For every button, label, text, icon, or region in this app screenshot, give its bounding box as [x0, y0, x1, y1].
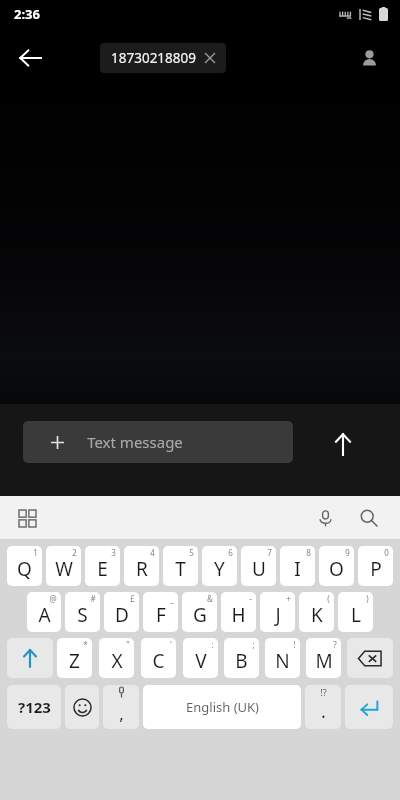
staticText: 5	[189, 547, 194, 558]
staticText: T	[175, 556, 186, 582]
staticText: ?123	[18, 697, 51, 717]
staticText: 0	[384, 547, 389, 558]
staticText: H	[231, 602, 246, 628]
staticText: £	[130, 593, 135, 604]
staticText: O	[329, 556, 344, 582]
staticText: ,	[119, 702, 124, 725]
button[interactable]: Text message	[23, 421, 293, 463]
button[interactable]: !	[265, 638, 300, 678]
button[interactable]: :	[183, 638, 218, 678]
button[interactable]: 4	[124, 546, 159, 586]
button[interactable]: &	[182, 592, 217, 632]
button[interactable]: 6	[202, 546, 237, 586]
staticText: L	[351, 602, 361, 628]
staticText: V	[195, 648, 207, 674]
button[interactable]: Backspace	[347, 638, 393, 678]
staticText: M	[315, 648, 333, 674]
staticText: 2	[72, 547, 77, 558]
button[interactable]: 1	[7, 546, 42, 586]
button[interactable]: £	[104, 592, 139, 632]
button[interactable]: Voice input	[306, 499, 344, 537]
button[interactable]: *	[57, 638, 92, 678]
button[interactable]: ,	[103, 685, 139, 729]
staticText: +	[286, 593, 291, 604]
staticText: N	[275, 648, 290, 674]
staticText: P	[370, 556, 382, 582]
staticText: ?	[333, 639, 337, 650]
staticText: X	[111, 648, 123, 674]
button[interactable]: -	[221, 592, 256, 632]
staticText: )	[366, 593, 369, 604]
button[interactable]: Contact details	[348, 37, 390, 79]
button[interactable]: _	[143, 592, 178, 632]
staticText: #	[90, 593, 96, 604]
button[interactable]: "	[99, 638, 134, 678]
staticText: English (UK)	[186, 698, 259, 716]
button[interactable]: 0	[358, 546, 393, 586]
button[interactable]: +	[260, 592, 295, 632]
button[interactable]: 3	[85, 546, 120, 586]
staticText: 3	[111, 547, 116, 558]
button[interactable]: Emoji	[65, 685, 99, 729]
staticText: C	[152, 648, 165, 674]
button[interactable]: Enter	[345, 685, 393, 729]
staticText: &	[207, 593, 213, 604]
staticText: Z	[69, 648, 80, 674]
button[interactable]: English (UK)	[143, 685, 301, 729]
staticText: W	[55, 556, 73, 582]
staticText: B	[235, 648, 248, 674]
button[interactable]: )	[338, 592, 373, 632]
staticText: Q	[17, 556, 32, 582]
button[interactable]: ;	[224, 638, 259, 678]
staticText: !?	[320, 686, 327, 698]
staticText: _	[170, 593, 174, 604]
button[interactable]: '	[141, 638, 176, 678]
staticText: (	[327, 593, 330, 604]
button[interactable]: Send	[320, 421, 366, 467]
button[interactable]: ?	[306, 638, 341, 678]
staticText: G	[193, 602, 207, 628]
staticText: @	[49, 593, 57, 604]
button[interactable]: Toolbar	[8, 499, 46, 537]
staticText: '	[170, 639, 172, 650]
button[interactable]: 18730218809	[100, 43, 226, 73]
staticText: K	[311, 602, 323, 628]
button[interactable]: !?	[305, 685, 341, 729]
button[interactable]: ?123	[7, 685, 61, 729]
staticText: 6	[228, 547, 233, 558]
staticText: ;	[252, 639, 255, 650]
staticText: 18730218809	[111, 49, 196, 67]
button[interactable]: Search	[350, 499, 388, 537]
staticText: S	[77, 602, 88, 628]
staticText: Text message	[87, 432, 183, 452]
staticText: "	[126, 639, 130, 650]
button[interactable]: Back	[8, 36, 52, 80]
button[interactable]: (	[299, 592, 334, 632]
staticText: .	[321, 699, 326, 724]
staticText: A	[38, 602, 51, 628]
staticText: Y	[214, 556, 225, 582]
button[interactable]: 9	[319, 546, 354, 586]
button[interactable]: @	[27, 592, 61, 632]
staticText: 9	[345, 547, 350, 558]
button[interactable]: 2	[46, 546, 81, 586]
button[interactable]: 5	[163, 546, 198, 586]
staticText: -	[249, 593, 252, 604]
button[interactable]: Shift	[7, 638, 53, 678]
button[interactable]: 8	[280, 546, 315, 586]
button[interactable]: #	[65, 592, 100, 632]
button[interactable]: 7	[241, 546, 276, 586]
staticText: J	[275, 602, 281, 628]
staticText: 1	[33, 547, 38, 558]
staticText: D	[115, 602, 129, 628]
staticText: I	[294, 556, 301, 582]
staticText: 2:36	[14, 5, 40, 23]
staticText: F	[156, 602, 166, 628]
staticText: *	[83, 639, 88, 650]
staticText: !	[293, 639, 296, 650]
staticText: :	[211, 639, 214, 650]
staticText: R	[136, 556, 148, 582]
staticText: 8	[306, 547, 311, 558]
staticText: 7	[267, 547, 272, 558]
staticText: E	[97, 556, 108, 582]
